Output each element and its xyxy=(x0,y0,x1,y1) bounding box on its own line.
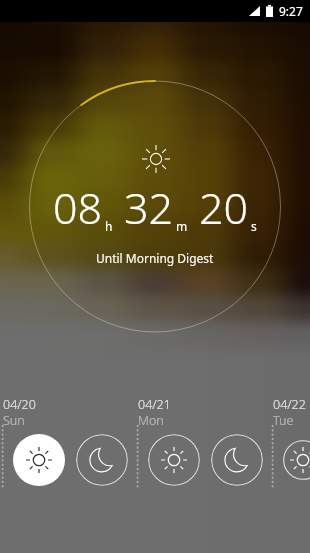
staticText: 20 xyxy=(199,178,249,237)
staticText: 9:27 xyxy=(279,3,303,19)
button[interactable]: Nighttime forecast 04/20 xyxy=(76,434,128,486)
staticText: 32 xyxy=(124,178,174,237)
staticText: h xyxy=(105,218,113,234)
staticText: 08 xyxy=(53,178,103,237)
staticText: s xyxy=(251,218,257,234)
button[interactable]: Nighttime forecast 04/21 xyxy=(211,434,263,486)
button[interactable]: Daytime forecast 04/22 xyxy=(283,434,310,486)
staticText: Sun xyxy=(3,412,25,429)
staticText: Tue xyxy=(273,412,294,429)
staticText: 04/21 xyxy=(138,396,171,413)
staticText: Until Morning Digest xyxy=(96,250,214,266)
staticText: 04/22 xyxy=(273,396,306,413)
button[interactable]: Daytime forecast 04/20 xyxy=(13,434,65,486)
button[interactable]: Daytime forecast 04/21 xyxy=(148,434,200,486)
staticText: 04/20 xyxy=(3,396,36,413)
staticText: m xyxy=(176,218,188,234)
staticText: Mon xyxy=(138,412,164,429)
